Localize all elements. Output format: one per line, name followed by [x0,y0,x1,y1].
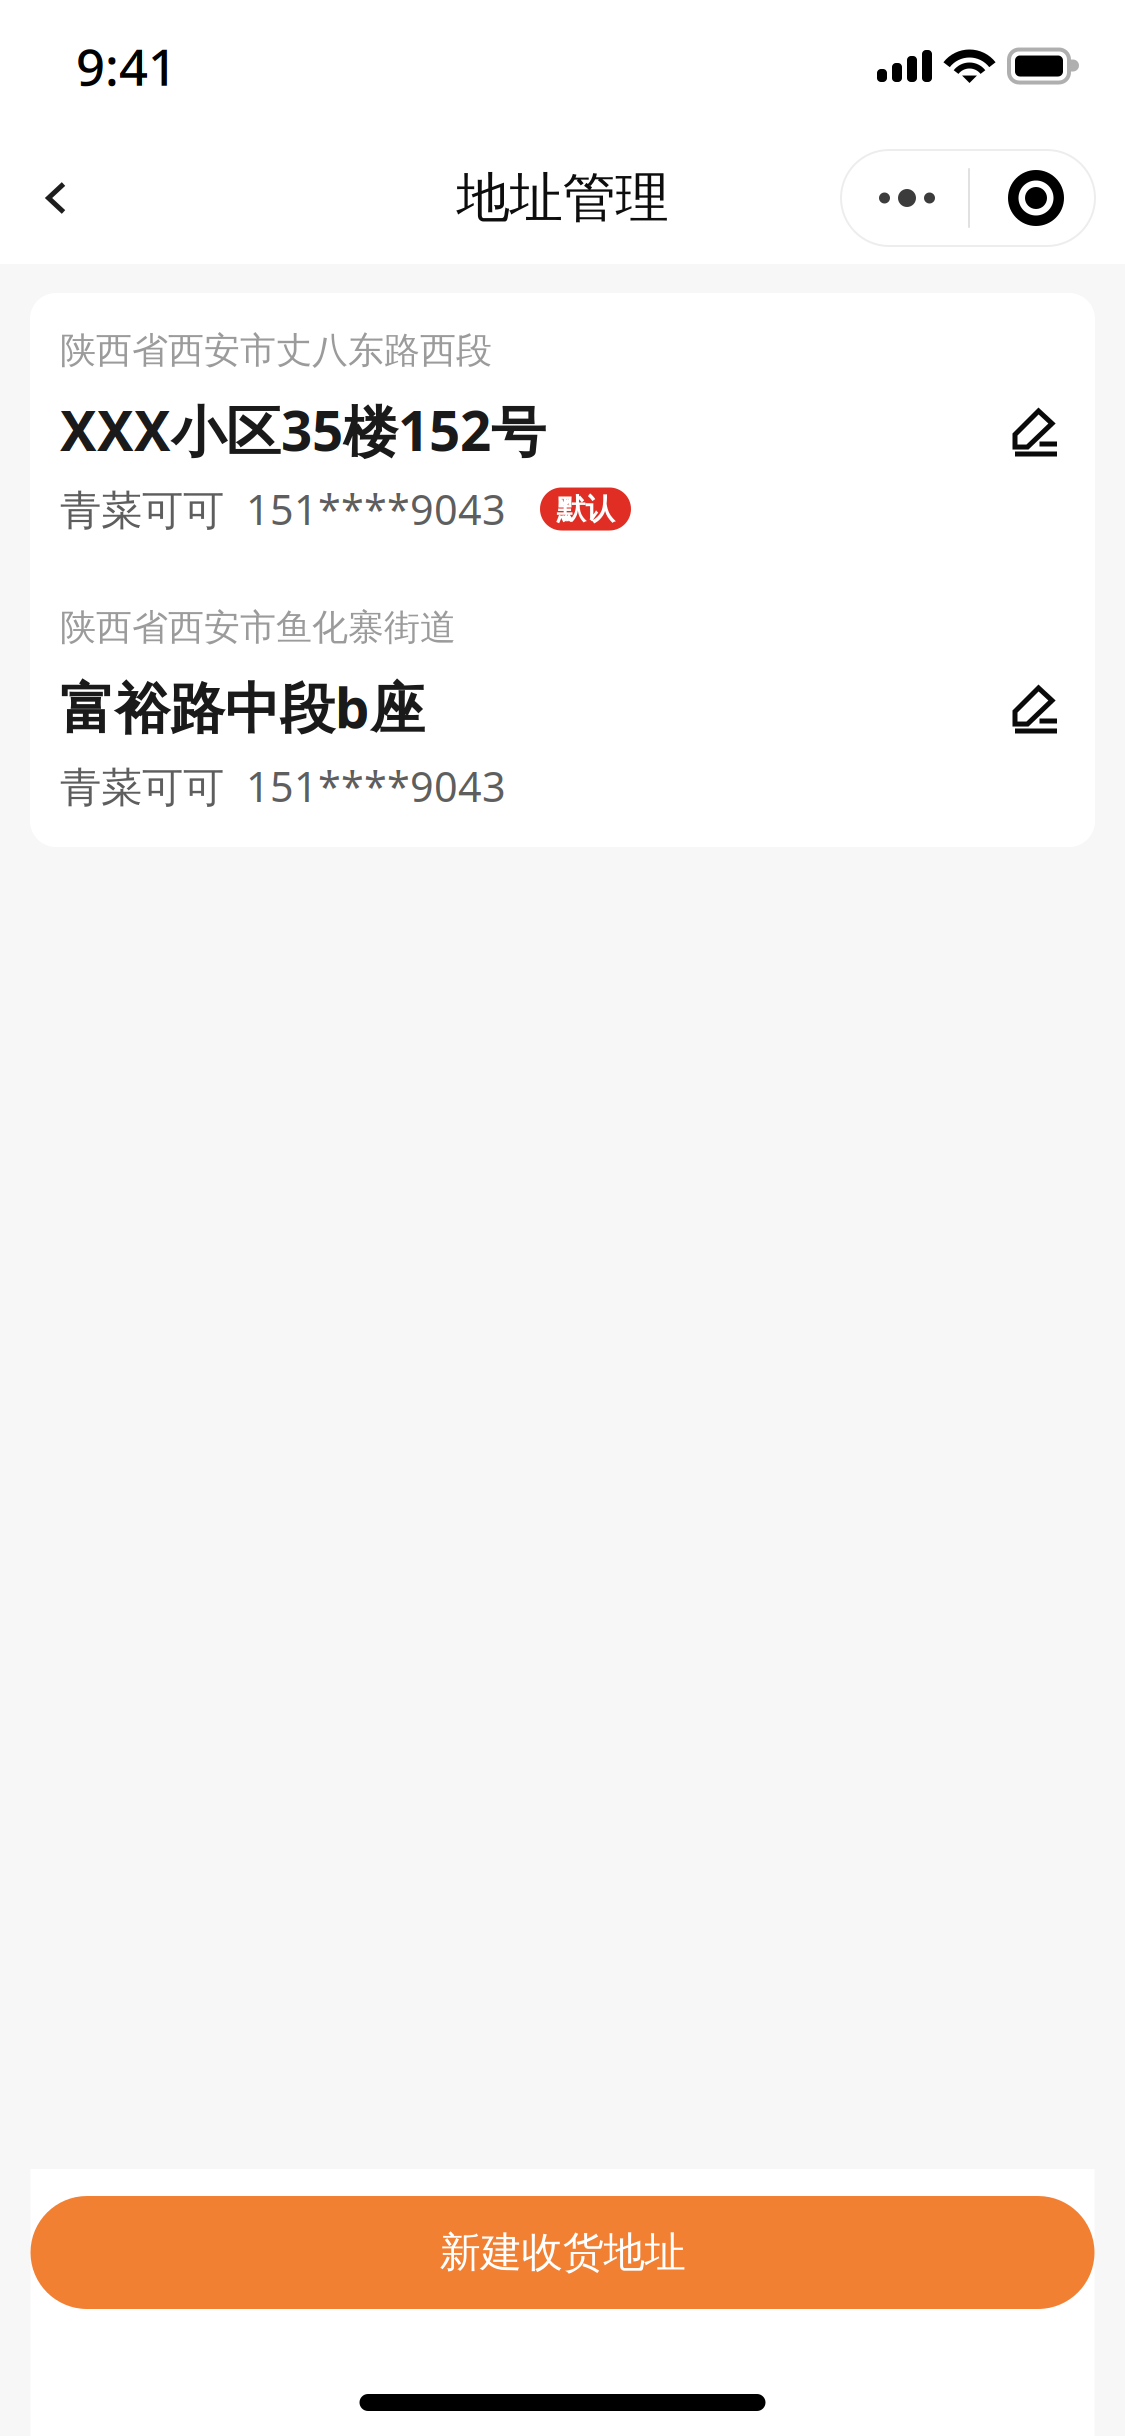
staticText: 陕西省西安市鱼化寨街道 [60,605,456,650]
staticText: 新建收货地址 [439,2227,685,2278]
staticText: 默认 [556,491,614,527]
staticText: 富裕路中段b座 [60,671,425,743]
button[interactable]: 陕西省西安市丈八东路西段 [30,293,1095,570]
staticText: 青菜可可 151****9043 [60,482,506,536]
button[interactable]: 新建收货地址 [30,2196,1094,2309]
staticText: 9:41 [76,32,177,100]
staticText: 陕西省西安市丈八东路西段 [60,328,492,373]
button[interactable]: 陕西省西安市鱼化寨街道 [30,570,1095,847]
staticText: 地址管理 [456,165,668,231]
button[interactable]: 返回 [10,149,102,247]
staticText: XXX小区35楼152号 [60,394,546,466]
staticText: 青菜可可 151****9043 [60,759,506,813]
button[interactable]: 更多功能 [841,150,1095,246]
